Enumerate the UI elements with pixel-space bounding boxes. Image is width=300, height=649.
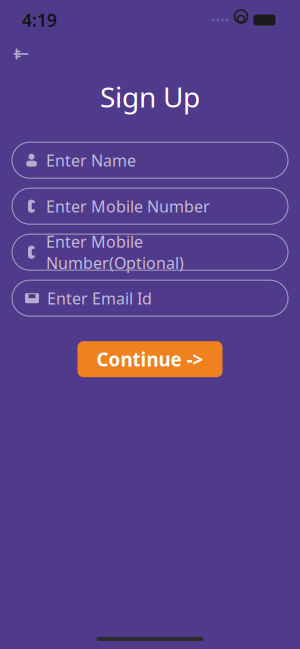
staticText: Continue -> bbox=[96, 347, 203, 372]
button[interactable]: Enter Email Id bbox=[12, 280, 288, 316]
button[interactable]: Continue -> bbox=[77, 341, 222, 377]
button[interactable]: Enter Name bbox=[12, 142, 288, 178]
staticText: Enter Mobile Number(Optional) bbox=[46, 231, 184, 273]
button[interactable]: Enter Mobile Number bbox=[12, 188, 288, 224]
button[interactable]: Enter Mobile Number(Optional) bbox=[12, 234, 288, 270]
staticText: Enter Email Id bbox=[47, 288, 152, 309]
staticText: Sign Up bbox=[100, 78, 200, 115]
staticText: Enter Name bbox=[46, 150, 136, 171]
staticText: Enter Mobile Number bbox=[46, 196, 210, 217]
button[interactable]: Back bbox=[0, 38, 42, 70]
staticText: 4:19 bbox=[22, 8, 57, 31]
